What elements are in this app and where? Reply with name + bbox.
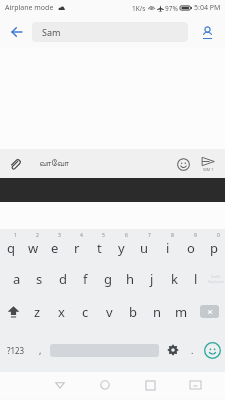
staticText: j <box>150 270 154 288</box>
button[interactable]: . <box>185 328 199 372</box>
button[interactable]: 9 <box>179 229 202 262</box>
staticText: e <box>51 239 59 257</box>
staticText: Keyboard <box>208 279 224 284</box>
button[interactable]: n <box>145 295 169 328</box>
staticText: 5:04 PM <box>194 3 221 13</box>
staticText: n <box>153 303 162 321</box>
button[interactable]: 7 <box>133 229 156 262</box>
staticText: 7 <box>148 232 151 239</box>
staticText: w <box>28 239 39 257</box>
staticText: k <box>171 270 178 288</box>
button[interactable]: l <box>185 262 207 295</box>
button[interactable]: Sam <box>32 22 188 42</box>
button[interactable]: 3 <box>44 229 66 262</box>
staticText: SIM 1 <box>203 167 214 172</box>
staticText: 5 <box>102 232 105 239</box>
staticText: v <box>106 303 113 321</box>
staticText: 9 <box>194 232 197 239</box>
staticText: h <box>126 270 135 288</box>
staticText: y <box>118 239 125 257</box>
button[interactable]: j <box>141 262 163 295</box>
staticText: p <box>210 239 218 257</box>
button[interactable]: Home <box>93 373 117 397</box>
button[interactable]: 8 <box>156 229 179 262</box>
staticText: b <box>129 303 137 321</box>
staticText: 1 <box>14 232 17 239</box>
staticText: 2 <box>36 232 39 239</box>
staticText: 1K/s <box>132 4 146 13</box>
button[interactable]: Add contact <box>194 19 220 45</box>
staticText: q <box>7 239 15 257</box>
button[interactable]: k <box>163 262 185 295</box>
button[interactable]: s <box>28 262 51 295</box>
staticText: 6 <box>125 232 128 239</box>
button[interactable]: Send <box>195 151 221 177</box>
staticText: 4 <box>80 232 83 239</box>
staticText: l <box>194 270 198 288</box>
button[interactable]: Back <box>4 19 30 45</box>
staticText: 3 <box>58 232 61 239</box>
staticText: வாவோ <box>39 159 69 168</box>
staticText: ?123 <box>7 345 25 356</box>
button[interactable]: Settings <box>161 328 185 372</box>
staticText: m <box>175 303 188 321</box>
staticText: a <box>13 270 21 288</box>
staticText: Swift <box>211 274 221 279</box>
staticText: Airplane mode <box>5 3 54 13</box>
button[interactable]: 2 <box>22 229 44 262</box>
button[interactable]: 4 <box>66 229 88 262</box>
staticText: x <box>58 303 65 321</box>
staticText: g <box>104 270 112 288</box>
staticText: 0 <box>217 232 220 239</box>
button[interactable]: v <box>97 295 121 328</box>
staticText: o <box>187 239 195 257</box>
button[interactable]: a <box>5 262 28 295</box>
button[interactable]: x <box>49 295 73 328</box>
staticText: i <box>166 239 170 257</box>
button[interactable]: m <box>169 295 193 328</box>
staticText: 97% <box>165 4 178 13</box>
button[interactable]: d <box>51 262 74 295</box>
button[interactable]: Shift <box>0 295 26 328</box>
button[interactable]: 1 <box>0 229 22 262</box>
button[interactable]: 5 <box>88 229 110 262</box>
staticText: f <box>83 270 88 288</box>
staticText: z <box>34 303 41 321</box>
button[interactable]: Recents <box>138 373 162 397</box>
staticText: Sam <box>42 26 61 38</box>
button[interactable]: f <box>74 262 97 295</box>
button[interactable]: c <box>73 295 97 328</box>
button[interactable]: Emoji <box>171 152 195 176</box>
staticText: t <box>97 239 102 257</box>
staticText: . <box>191 344 194 356</box>
button[interactable]: 0 <box>202 229 225 262</box>
button[interactable]: g <box>97 262 119 295</box>
staticText: , <box>39 344 42 356</box>
button[interactable]: ?123 <box>0 328 32 372</box>
button[interactable]: h <box>119 262 141 295</box>
button[interactable]: Back <box>48 373 72 397</box>
button[interactable]: Hide keyboard <box>183 373 207 397</box>
staticText: d <box>59 270 67 288</box>
button[interactable]: Backspace <box>193 295 225 328</box>
staticText: 8 <box>171 232 174 239</box>
button[interactable]: 6 <box>110 229 133 262</box>
staticText: c <box>82 303 89 321</box>
staticText: u <box>140 239 149 257</box>
button[interactable]: Emoji keyboard <box>199 328 225 372</box>
staticText: s <box>36 270 43 288</box>
button[interactable]: b <box>121 295 145 328</box>
button[interactable]: z <box>26 295 49 328</box>
button[interactable]: , <box>32 328 48 372</box>
staticText: r <box>74 239 80 257</box>
button[interactable]: Attach <box>3 152 27 176</box>
